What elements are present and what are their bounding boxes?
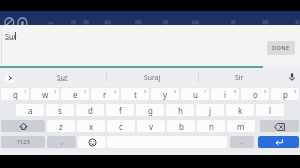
button[interactable] [258, 136, 299, 148]
staticText: f [119, 105, 122, 116]
button[interactable]: Expand suggestions [5, 73, 15, 83]
staticText: z [59, 121, 63, 132]
button[interactable]: c [107, 120, 135, 132]
staticText: 1 [24, 89, 27, 94]
staticText: ?123 [17, 138, 30, 146]
staticText: p [283, 89, 288, 100]
staticText: 4 [114, 89, 117, 94]
staticText: d [88, 105, 93, 116]
button[interactable]: p [271, 88, 299, 100]
button[interactable]: y [151, 88, 179, 100]
button[interactable]: v [137, 120, 165, 132]
staticText: t [134, 89, 137, 100]
button[interactable] [260, 120, 299, 132]
button[interactable]: Sir [198, 67, 280, 87]
button[interactable]: f [106, 104, 134, 116]
button[interactable] [78, 136, 106, 148]
staticText: 3 [84, 89, 87, 94]
staticText: h [178, 105, 183, 116]
staticText: 6 [174, 89, 177, 94]
staticText: , [61, 137, 63, 147]
button[interactable]: h [166, 104, 194, 116]
button[interactable]: w [31, 88, 59, 100]
button[interactable]: DONE [267, 41, 295, 55]
button[interactable]: Sur [18, 67, 106, 87]
button[interactable]: t [121, 88, 149, 100]
staticText: . [241, 137, 243, 147]
staticText: g [148, 105, 153, 116]
button[interactable]: Voice input [284, 67, 300, 87]
button[interactable]: g [136, 104, 164, 116]
button[interactable]: Suraj [106, 67, 198, 87]
button[interactable]: m [227, 120, 255, 132]
staticText: r [103, 89, 107, 100]
staticText: 0 [294, 89, 297, 94]
button[interactable]: . [230, 136, 254, 148]
button[interactable]: i [211, 88, 239, 100]
button[interactable]: n [197, 120, 225, 132]
button[interactable] [1, 120, 45, 132]
button[interactable]: l [256, 104, 284, 116]
button[interactable]: r [91, 88, 119, 100]
staticText: v [149, 121, 154, 132]
button[interactable]: q [1, 88, 29, 100]
staticText: k [238, 105, 243, 116]
button[interactable]: e [61, 88, 89, 100]
staticText: i [224, 89, 227, 100]
staticText: 5 [144, 89, 147, 94]
button[interactable]: u [181, 88, 209, 100]
staticText: a [28, 105, 33, 116]
staticText: 7 [204, 89, 207, 94]
button[interactable]: d [76, 104, 104, 116]
button[interactable]: x [77, 120, 105, 132]
staticText: u [193, 89, 198, 100]
staticText: o [253, 89, 258, 100]
staticText: 2 [54, 89, 57, 94]
staticText: y [163, 89, 168, 100]
staticText: 9 [264, 89, 267, 94]
staticText: n [209, 121, 214, 132]
button[interactable]: j [196, 104, 224, 116]
staticText: Suraj [144, 73, 161, 82]
staticText: c [119, 121, 123, 132]
button[interactable]: z [47, 120, 75, 132]
staticText: Sur [5, 31, 17, 41]
button[interactable]: o [241, 88, 269, 100]
staticText: j [209, 105, 212, 116]
button[interactable]: b [167, 120, 195, 132]
staticText: q [13, 89, 18, 100]
button[interactable]: s [46, 104, 74, 116]
staticText: l [269, 105, 272, 116]
button[interactable]: a [16, 104, 44, 116]
staticText: m [237, 121, 245, 132]
staticText: Sir [235, 73, 244, 82]
staticText: 8 [234, 89, 237, 94]
button[interactable]: k [226, 104, 254, 116]
staticText: x [89, 121, 94, 132]
staticText: w [42, 89, 49, 100]
staticText: e [73, 89, 78, 100]
staticText: s [58, 105, 62, 116]
staticText: DONE [272, 44, 290, 52]
staticText: b [179, 121, 184, 132]
staticText: Sur [57, 73, 68, 82]
button[interactable]: , [47, 136, 76, 148]
button[interactable]: ?123 [1, 136, 45, 148]
